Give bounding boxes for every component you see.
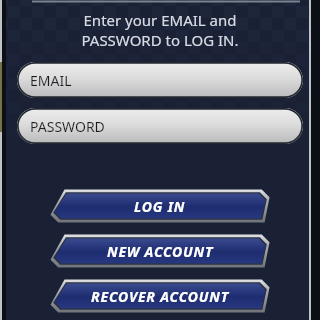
button[interactable]: PASSWORD bbox=[17, 108, 303, 144]
staticText: Enter your EMAIL and PASSWORD to LOG IN. bbox=[0, 10, 320, 50]
staticText: RECOVER ACCOUNT bbox=[91, 287, 229, 306]
button[interactable]: NEW ACCOUNT bbox=[50, 234, 270, 268]
button[interactable]: RECOVER ACCOUNT bbox=[50, 279, 270, 313]
button[interactable]: LOG IN bbox=[50, 189, 270, 223]
staticText: NEW ACCOUNT bbox=[107, 242, 214, 261]
staticText: PASSWORD bbox=[30, 117, 105, 136]
staticText: EMAIL bbox=[30, 71, 72, 90]
staticText: LOG IN bbox=[134, 197, 186, 216]
button[interactable]: EMAIL bbox=[17, 62, 303, 98]
